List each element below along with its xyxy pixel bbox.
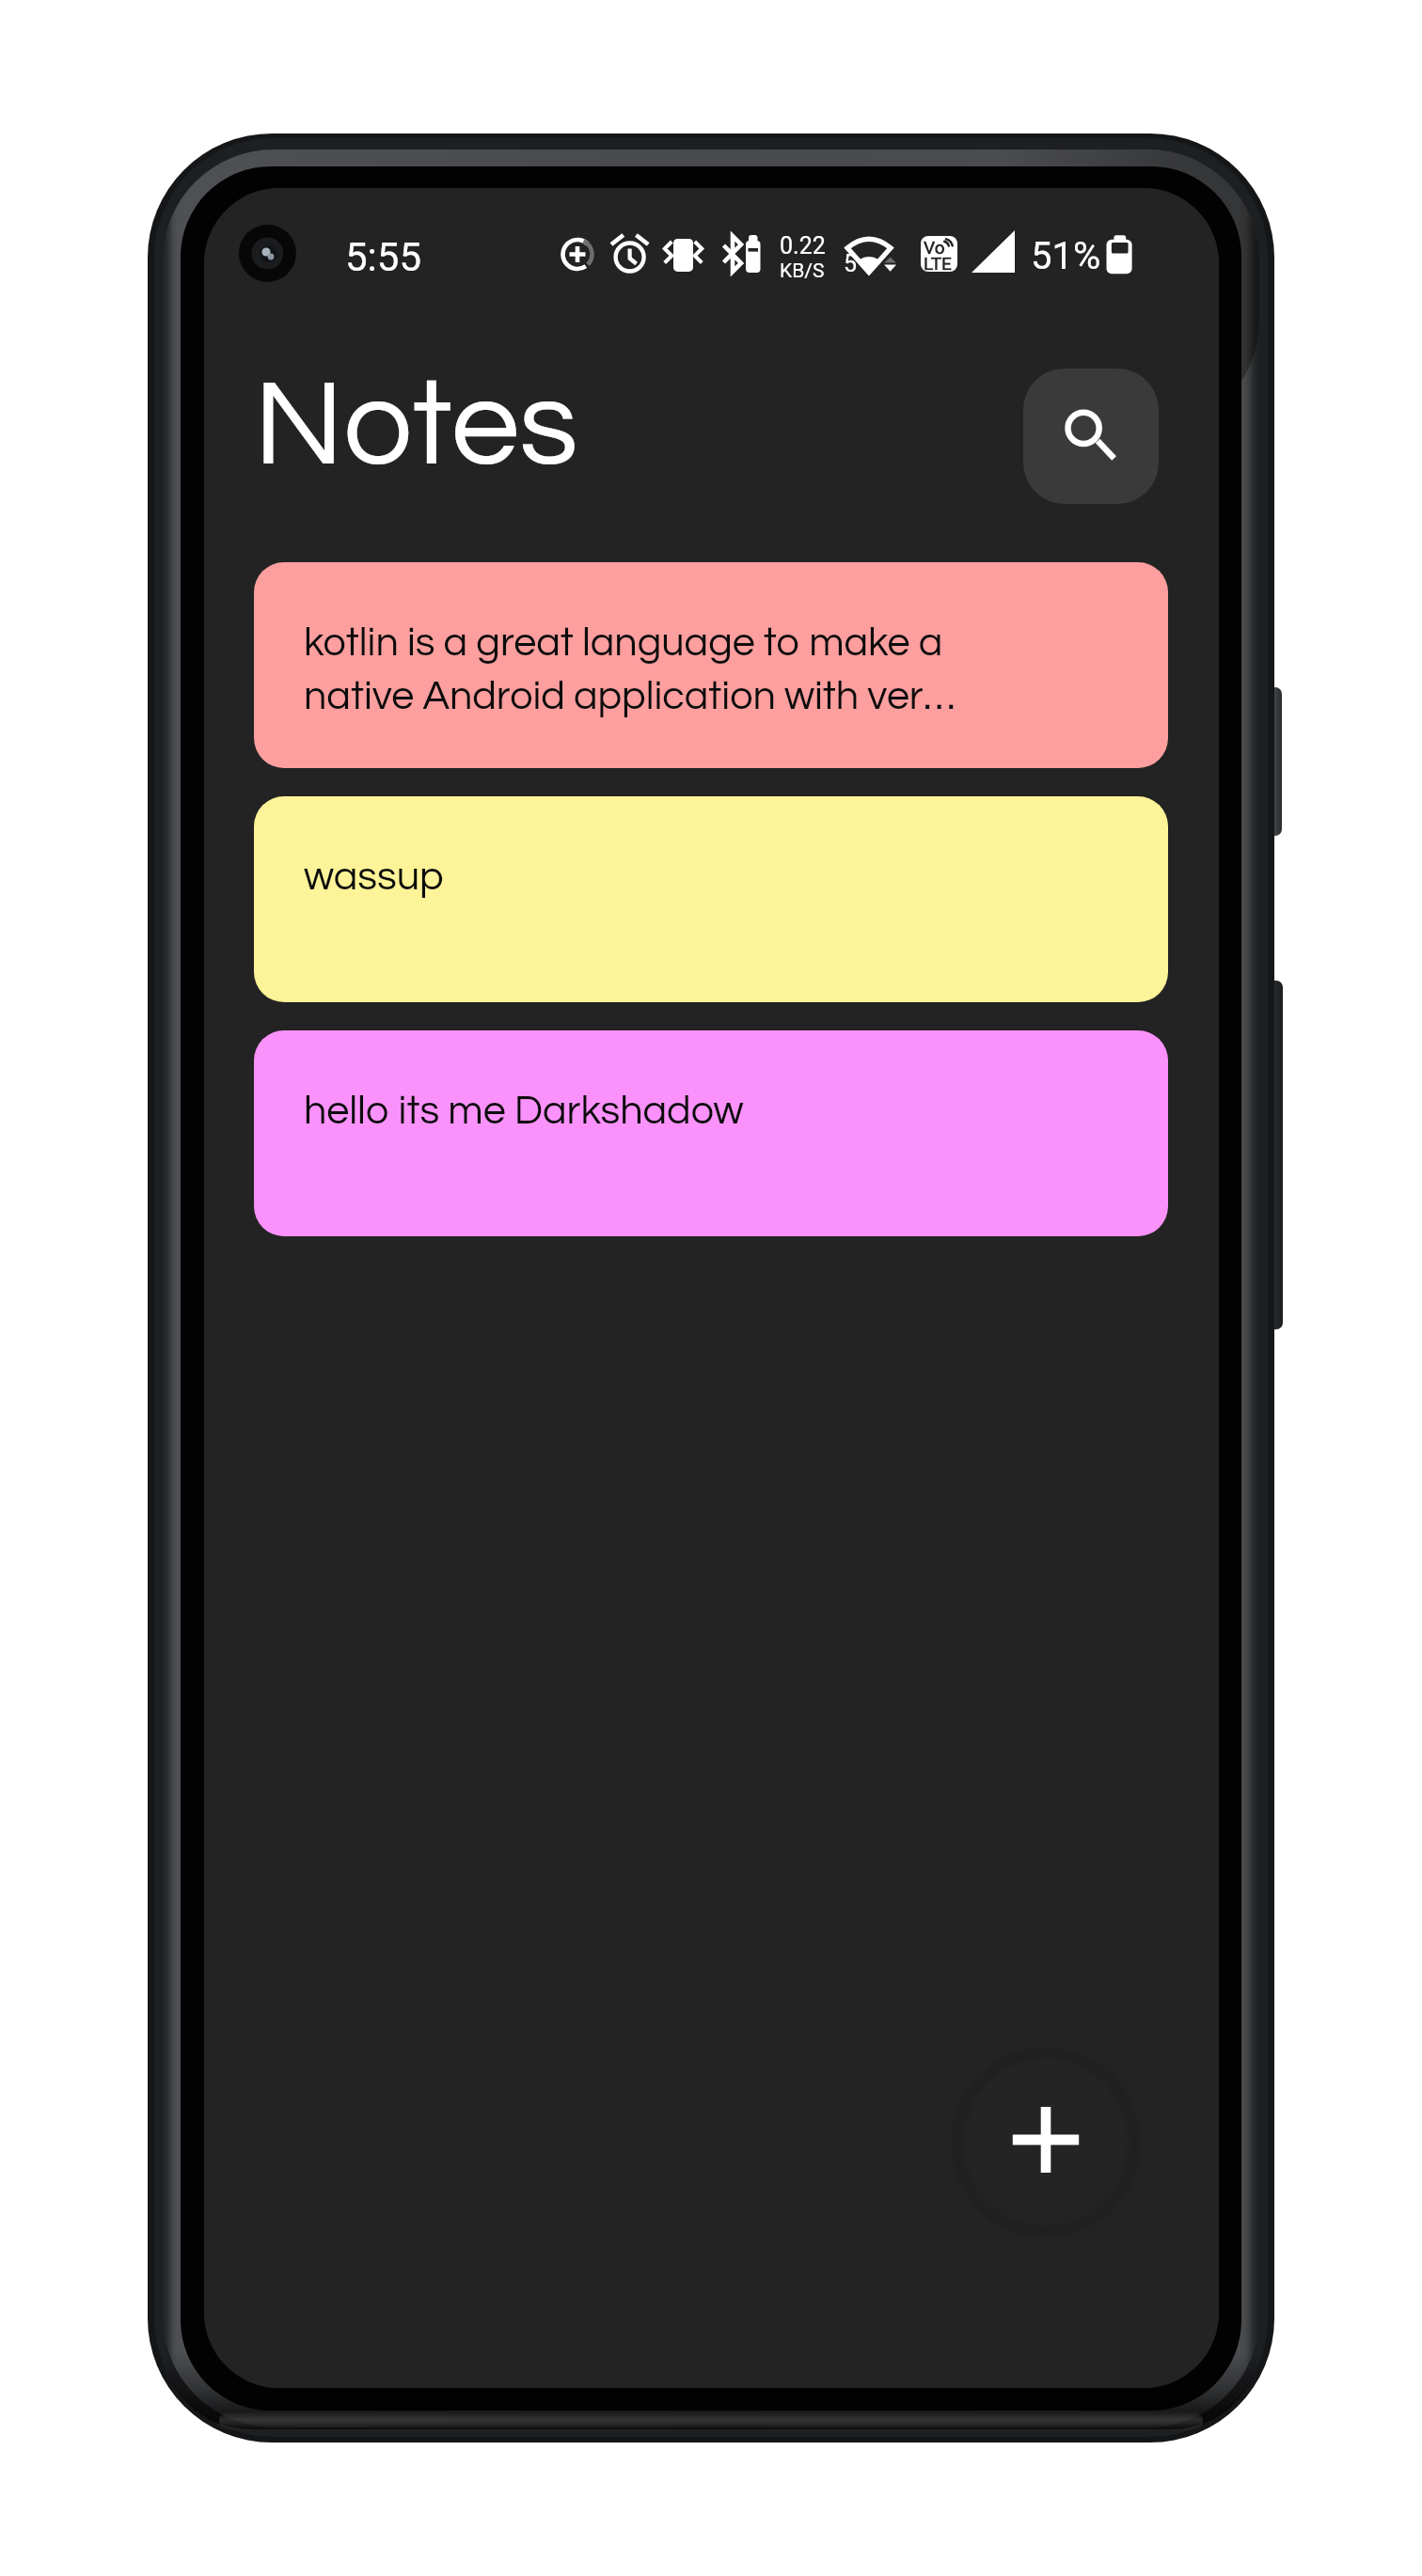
button[interactable]: kotlin is a great language to make a nat… (254, 562, 1168, 768)
staticText: 5:55 (345, 234, 421, 280)
staticText: wassup (304, 856, 962, 898)
staticText: Vo (924, 237, 945, 258)
button[interactable]: wassup (254, 796, 1168, 1002)
staticText: kotlin is a great language to make a nat… (304, 622, 962, 717)
button[interactable]: Search (1023, 369, 1159, 504)
staticText: KB/S (780, 259, 825, 283)
staticText: hello its me Darkshadow (304, 1091, 962, 1132)
staticText: LTE (924, 253, 952, 272)
staticText: Notes (254, 363, 578, 489)
staticText: 5 (844, 250, 858, 277)
button[interactable]: Add note (967, 2059, 1125, 2217)
staticText: 51% (1031, 234, 1101, 278)
button[interactable]: hello its me Darkshadow (254, 1030, 1168, 1236)
staticText: 0.22 (780, 232, 826, 259)
